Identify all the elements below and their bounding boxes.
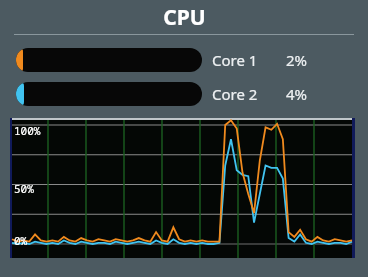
staticText: 50%	[14, 181, 34, 196]
staticText: 0%	[14, 233, 28, 248]
staticText: 4%	[286, 84, 308, 104]
staticText: 2%	[286, 50, 308, 70]
staticText: Core 2	[212, 84, 258, 104]
button[interactable]: Core 1	[16, 48, 354, 72]
button[interactable]: CPU usage history chart	[10, 118, 355, 258]
staticText: Core 1	[212, 50, 258, 70]
staticText: 100%	[14, 123, 41, 138]
staticText: CPU	[163, 3, 206, 32]
button[interactable]: Core 2	[16, 82, 354, 106]
